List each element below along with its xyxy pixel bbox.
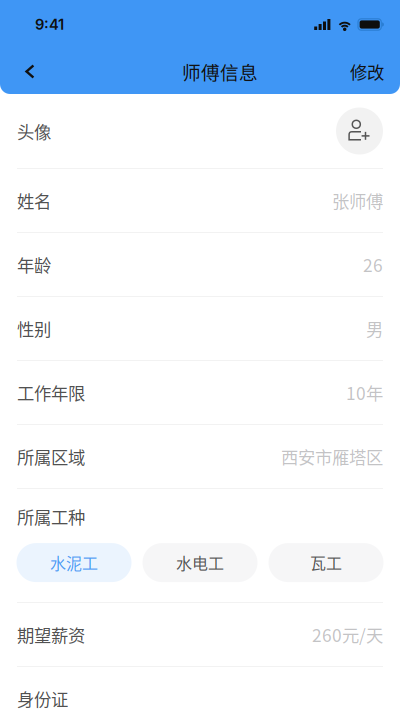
- staticText: 性别: [17, 316, 51, 341]
- button[interactable]: Back: [8, 49, 52, 93]
- staticText: 10年: [346, 380, 383, 405]
- button[interactable]: 工作年限: [0, 361, 400, 425]
- button[interactable]: 水电工: [142, 543, 257, 582]
- staticText: 26: [363, 252, 383, 277]
- staticText: 工作年限: [17, 380, 85, 405]
- staticText: 所属区域: [17, 444, 85, 469]
- staticText: 西安市雁塔区: [281, 444, 383, 469]
- button[interactable]: 年龄: [0, 233, 400, 297]
- staticText: 水泥工: [50, 551, 98, 574]
- staticText: 260元/天: [312, 622, 383, 647]
- button[interactable]: 姓名: [0, 169, 400, 233]
- staticText: 年龄: [17, 252, 51, 277]
- staticText: 所属工种: [17, 504, 85, 529]
- button[interactable]: 瓦工: [268, 543, 383, 582]
- button[interactable]: 头像: [0, 94, 400, 169]
- staticText: 修改: [350, 59, 384, 84]
- button[interactable]: 所属区域: [0, 425, 400, 489]
- button[interactable]: 期望薪资: [0, 603, 400, 667]
- staticText: 期望薪资: [17, 622, 85, 647]
- staticText: 水电工: [176, 551, 224, 574]
- staticText: 头像: [17, 118, 51, 144]
- button[interactable]: 水泥工: [16, 543, 131, 582]
- button[interactable]: 性别: [0, 297, 400, 361]
- button[interactable]: 身份证: [0, 667, 400, 711]
- staticText: 张师傅: [332, 188, 383, 213]
- staticText: 9:41: [35, 16, 64, 33]
- staticText: 瓦工: [310, 551, 342, 574]
- button[interactable]: 修改: [350, 49, 384, 93]
- staticText: 姓名: [17, 188, 51, 213]
- staticText: 男: [366, 316, 383, 341]
- staticText: 身份证: [17, 686, 68, 711]
- staticText: 师傅信息: [182, 58, 258, 85]
